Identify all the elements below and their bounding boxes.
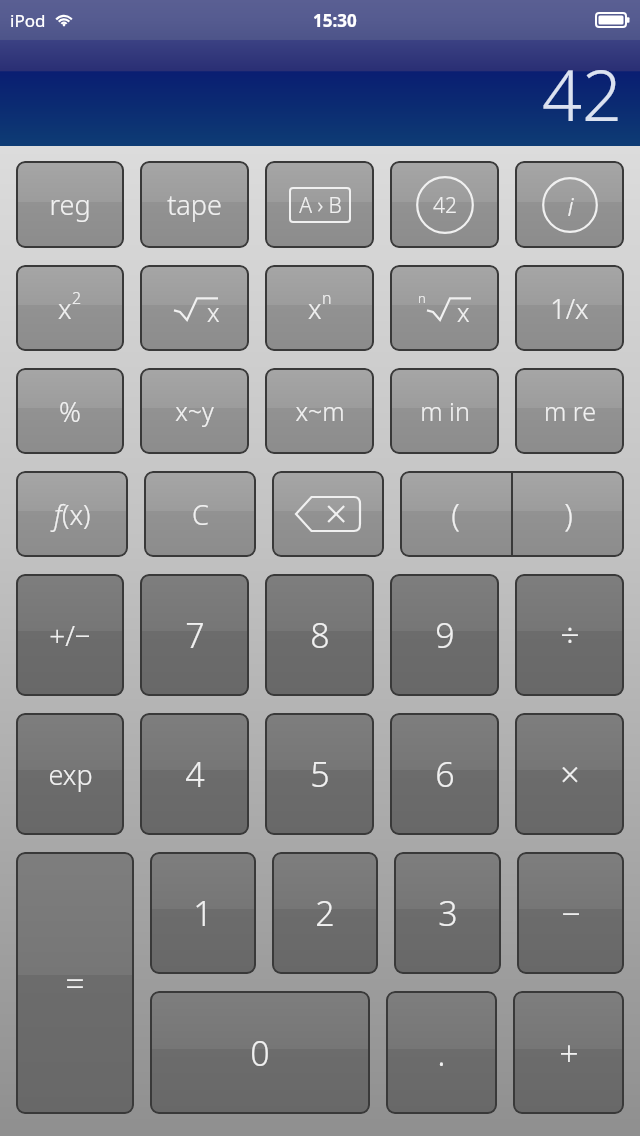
button[interactable]: plus minus [16, 574, 124, 696]
staticText: 4 [185, 751, 205, 797]
staticText: m in [420, 394, 470, 428]
staticText: tape [167, 186, 222, 223]
button[interactable]: 1 [150, 852, 256, 974]
staticText: 42 [433, 191, 457, 220]
staticText: n [322, 287, 332, 309]
button[interactable]: nth root of x [390, 265, 499, 351]
staticText: 3 [438, 890, 458, 936]
staticText: 9 [435, 612, 455, 658]
staticText: iPod [10, 9, 46, 32]
button[interactable]: A to B [265, 161, 374, 248]
staticText: exp [48, 756, 93, 793]
button[interactable]: x~y [140, 368, 249, 454]
staticText: ÷ [560, 612, 580, 658]
button[interactable]: 9 [390, 574, 499, 696]
button[interactable]: 4 [140, 713, 249, 835]
button[interactable]: Constant 42 [390, 161, 499, 248]
button[interactable]: reg [16, 161, 124, 248]
staticText: x [207, 295, 220, 329]
staticText: 8 [310, 612, 330, 658]
staticText: 7 [185, 612, 205, 658]
staticText: + [559, 1030, 579, 1076]
button[interactable]: 1/x [515, 265, 624, 351]
button[interactable]: % [16, 368, 124, 454]
staticText: x~y [175, 394, 214, 428]
staticText: 15:30 [313, 9, 357, 32]
button[interactable]: Backspace [272, 471, 384, 557]
staticText: reg [49, 186, 91, 223]
button[interactable]: tape [140, 161, 249, 248]
staticText: A › B [299, 191, 342, 220]
staticText: +/− [49, 616, 91, 654]
button[interactable]: Plus [513, 991, 624, 1114]
button[interactable]: x to the n [265, 265, 374, 351]
button[interactable]: m re [515, 368, 624, 454]
staticText: = [65, 960, 85, 1006]
staticText: . [437, 1030, 446, 1076]
button[interactable]: functions [16, 471, 128, 557]
staticText: m re [544, 394, 596, 428]
staticText: 1/x [550, 290, 589, 327]
staticText: ) [564, 493, 573, 535]
staticText: C [192, 496, 209, 533]
staticText: n [418, 289, 426, 307]
button[interactable]: 5 [265, 713, 374, 835]
staticText: 42 [542, 46, 622, 141]
staticText: x [457, 295, 470, 329]
button[interactable]: 8 [265, 574, 374, 696]
staticText: × [560, 751, 580, 797]
staticText: 0 [250, 1030, 270, 1076]
button[interactable]: 3 [394, 852, 501, 974]
button[interactable]: square root of x [140, 265, 249, 351]
staticText: f [54, 496, 62, 533]
button[interactable]: 0 [150, 991, 370, 1114]
button[interactable]: m in [390, 368, 499, 454]
staticText: 2 [315, 890, 335, 936]
button[interactable]: Equals [16, 852, 134, 1114]
button[interactable]: Divide [515, 574, 624, 696]
staticText: (x) [62, 496, 91, 533]
button[interactable]: 7 [140, 574, 249, 696]
button[interactable]: Decimal point [386, 991, 497, 1114]
button[interactable]: 2 [272, 852, 378, 974]
staticText: x [308, 290, 322, 327]
staticText: 5 [310, 751, 330, 797]
staticText: − [561, 890, 581, 936]
button[interactable]: Minus [517, 852, 624, 974]
staticText: i [567, 188, 574, 223]
staticText: 1 [193, 890, 213, 936]
staticText: 2 [72, 287, 82, 309]
button[interactable]: x squared [16, 265, 124, 351]
button[interactable]: C [144, 471, 256, 557]
staticText: x [58, 290, 72, 327]
staticText: % [59, 393, 81, 430]
button[interactable]: x~m [265, 368, 374, 454]
button[interactable]: Multiply [515, 713, 624, 835]
button[interactable]: exp [16, 713, 124, 835]
button[interactable]: Info [515, 161, 624, 248]
staticText: 6 [435, 751, 455, 797]
staticText: ( [451, 493, 460, 535]
button[interactable]: ( [400, 471, 511, 557]
button[interactable]: 6 [390, 713, 499, 835]
staticText: x~m [295, 394, 345, 428]
button[interactable]: ) [513, 471, 624, 557]
